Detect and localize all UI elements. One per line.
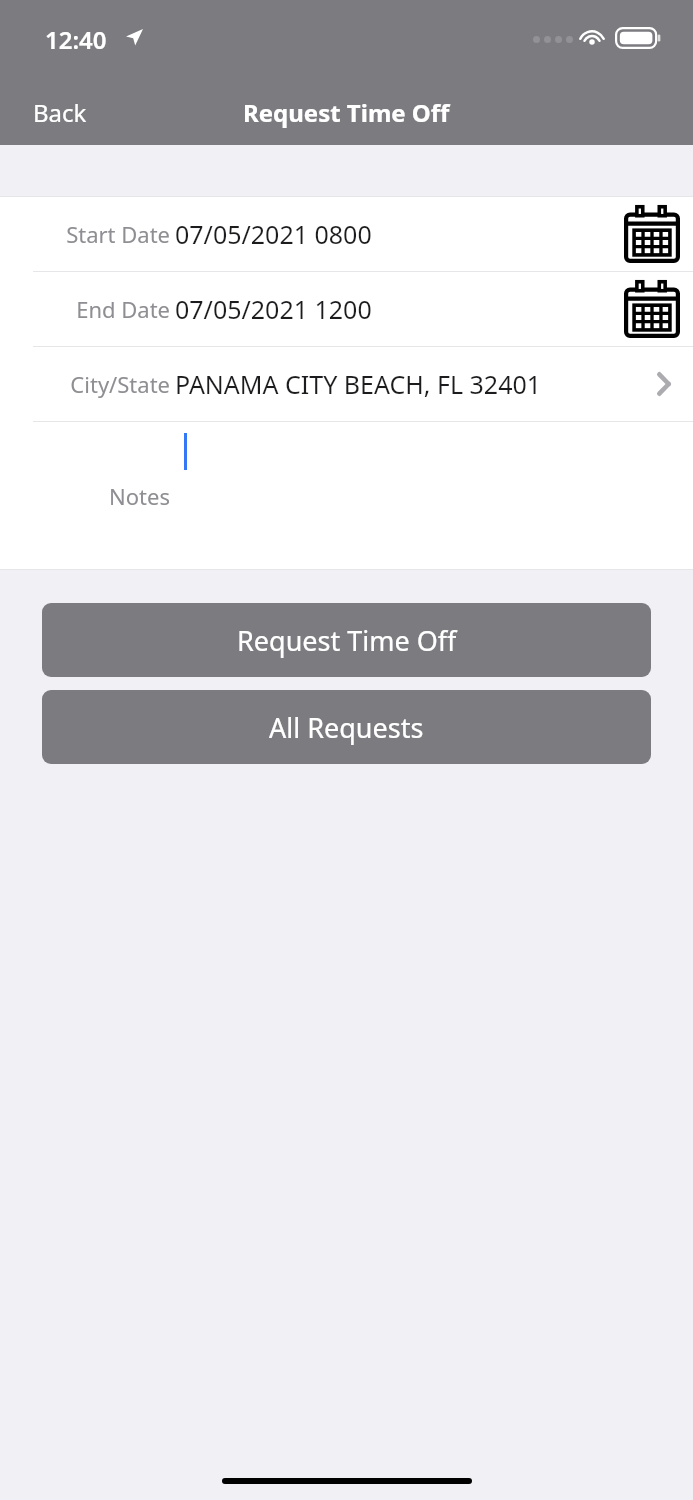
staticText: City/State [0, 369, 170, 399]
button[interactable]: End Date [0, 272, 693, 346]
button[interactable]: Notes [0, 422, 693, 569]
staticText: Request Time Off [243, 96, 450, 129]
staticText: 07/05/2021 1200 [175, 292, 372, 326]
staticText: All Requests [269, 709, 424, 746]
staticText: PANAMA CITY BEACH, FL 32401 [175, 367, 542, 401]
button[interactable]: Pick date [624, 280, 680, 338]
button[interactable]: Back [0, 86, 120, 139]
button[interactable]: All Requests [42, 690, 651, 764]
staticText: Notes [0, 481, 170, 511]
button[interactable]: Request Time Off [42, 603, 651, 677]
button[interactable]: City/State [0, 347, 693, 421]
staticText: 12:40 [45, 23, 107, 56]
staticText: Start Date [0, 219, 170, 249]
button[interactable]: Choose city and state [657, 372, 671, 396]
staticText: 07/05/2021 0800 [175, 217, 372, 251]
button[interactable]: Start Date [0, 197, 693, 271]
staticText: End Date [0, 294, 170, 324]
button[interactable]: Pick date [624, 205, 680, 263]
staticText: Request Time Off [237, 622, 457, 659]
staticText: Back [33, 96, 87, 129]
